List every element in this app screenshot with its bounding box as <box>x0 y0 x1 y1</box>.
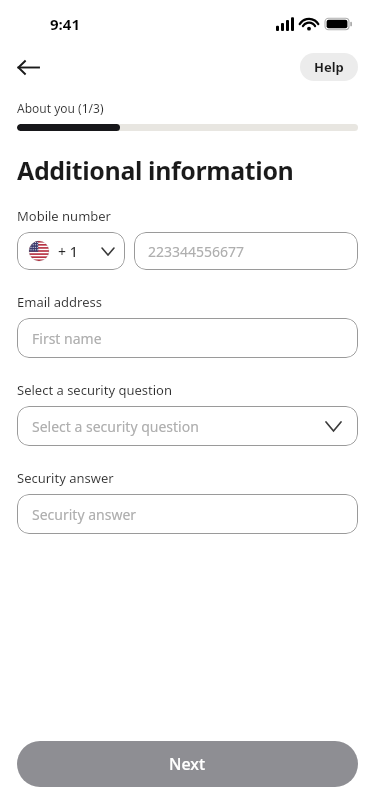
staticText: Security answer <box>32 505 137 524</box>
staticText: Select a security question <box>32 417 199 436</box>
staticText: Help <box>314 58 344 76</box>
staticText: Select a security question <box>17 381 172 399</box>
staticText: 9:41 <box>50 14 80 34</box>
staticText: Security answer <box>17 469 114 487</box>
button[interactable]: Security answer <box>17 494 358 534</box>
staticText: About you (1/3) <box>17 100 104 116</box>
staticText: Mobile number <box>17 207 111 225</box>
button[interactable]: Back <box>10 49 46 85</box>
button[interactable]: Help <box>300 53 358 81</box>
staticText: 223344556677 <box>148 242 245 261</box>
button[interactable]: Next <box>17 741 358 787</box>
button[interactable]: Select country code <box>17 232 125 270</box>
staticText: First name <box>32 329 102 348</box>
button[interactable]: 223344556677 <box>134 232 358 270</box>
button[interactable]: First name <box>17 318 358 358</box>
staticText: Email address <box>17 293 102 311</box>
staticText: Additional information <box>17 153 294 187</box>
staticText: + 1 <box>58 242 78 261</box>
button[interactable]: Select a security question <box>17 406 358 446</box>
staticText: Next <box>169 753 206 775</box>
